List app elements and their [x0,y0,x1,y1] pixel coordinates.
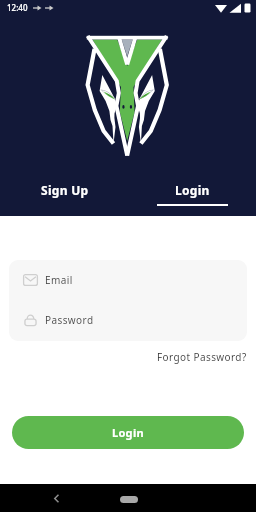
button[interactable]: Back [44,486,68,510]
staticText: 12:40 [7,2,28,13]
staticText: Sign Up [41,182,89,198]
staticText: Email [45,273,73,287]
button[interactable]: Home [120,496,138,503]
button[interactable]: Password [9,300,247,340]
staticText: Login [112,425,144,440]
staticText: Login [175,182,210,198]
button[interactable]: Login [12,416,244,449]
button[interactable]: Forgot Password? [148,346,256,368]
staticText: Password [45,313,94,327]
button[interactable]: Login [128,182,256,206]
button[interactable]: Email [9,260,247,300]
button[interactable]: Sign Up [0,182,128,206]
